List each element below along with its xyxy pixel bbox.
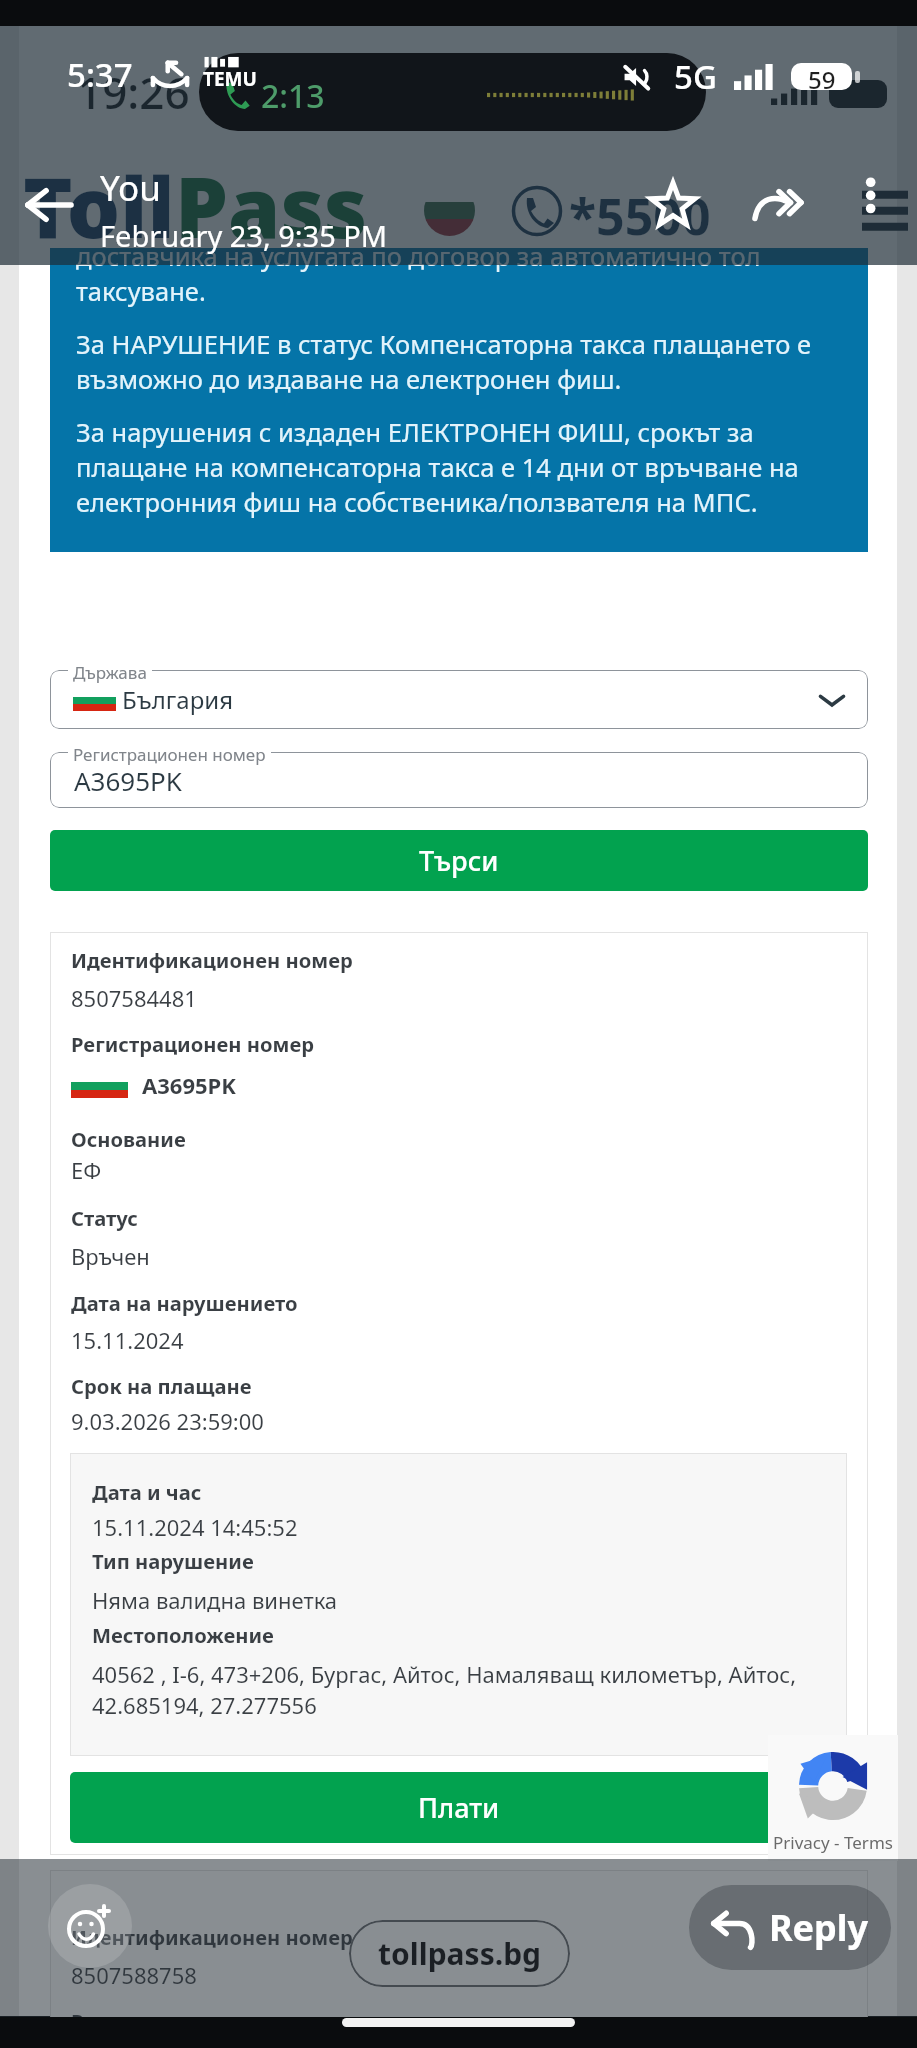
staticText: Основание xyxy=(71,1125,186,1153)
button[interactable]: tollpass.bg xyxy=(349,1920,570,1987)
staticText: Идентификационен номер xyxy=(71,946,353,974)
staticText: Регистрационен номер xyxy=(71,1030,315,1058)
button[interactable]: Ongoing call xyxy=(199,53,706,131)
staticText: Тип нарушение xyxy=(92,1547,254,1575)
staticText: ЕФ xyxy=(71,1155,102,1185)
staticText: Дата и час xyxy=(92,1478,202,1506)
staticText: 19:26 xyxy=(77,62,190,122)
staticText: За нарушения с издаден ЕЛЕКТРОНЕН ФИШ, с… xyxy=(76,415,754,450)
staticText: Статус xyxy=(71,1204,138,1232)
staticText: Местоположение xyxy=(92,1621,274,1649)
staticText: 15.11.2024 xyxy=(71,1325,184,1355)
staticText: TEMU xyxy=(203,66,257,92)
staticText: Няма валидна винетка xyxy=(92,1585,338,1615)
staticText: 5G xyxy=(674,54,717,99)
staticText: Плати xyxy=(418,1789,500,1826)
staticText: Дата на нарушението xyxy=(71,1289,298,1317)
button[interactable]: Favourite xyxy=(640,172,706,238)
staticText: Срок на плащане xyxy=(71,1372,252,1400)
staticText: Privacy - Terms xyxy=(773,1831,893,1854)
button[interactable]: You xyxy=(100,164,388,255)
staticText: таксуване. xyxy=(76,274,206,309)
staticText: Връчен xyxy=(71,1241,150,1271)
staticText: Държава xyxy=(73,661,147,684)
button[interactable]: Reply xyxy=(689,1885,891,1970)
staticText: 8507588758 xyxy=(71,1960,197,1990)
staticText: Търси xyxy=(419,842,499,879)
staticText: 42.685194, 27.277556 xyxy=(92,1690,317,1720)
staticText: 8507584481 xyxy=(71,983,197,1013)
staticText: Reply xyxy=(769,1903,869,1952)
staticText: A3695PK xyxy=(142,1070,236,1100)
staticText: tollpass.bg xyxy=(378,1933,542,1974)
staticText: 15.11.2024 14:45:52 xyxy=(92,1512,298,1542)
staticText: *5500 xyxy=(569,182,711,250)
staticText: February 23, 9:35 PM xyxy=(100,216,388,255)
button[interactable]: Back xyxy=(14,170,84,240)
staticText: плащане на компенсаторна такса е 14 дни … xyxy=(76,450,799,485)
staticText: Pass xyxy=(175,148,368,262)
button[interactable]: Forward xyxy=(745,172,811,238)
staticText: България xyxy=(122,683,233,716)
staticText: Toll xyxy=(23,148,175,262)
staticText: Идентификационен номер xyxy=(71,1923,353,1951)
staticText: Регистрационен номер xyxy=(71,2007,315,2035)
staticText: За НАРУШЕНИЕ в статус Компенсаторна такс… xyxy=(76,327,812,362)
staticText: 5:37 xyxy=(67,52,133,97)
button[interactable]: Плати xyxy=(70,1772,847,1843)
staticText: възможно до издаване на електронен фиш. xyxy=(76,362,622,397)
staticText: доставчика на услугата по договор за авт… xyxy=(76,248,761,274)
staticText: електронния фиш на собственика/ползвател… xyxy=(76,485,758,520)
staticText: 9.03.2026 23:59:00 xyxy=(71,1406,264,1436)
button[interactable]: Търси xyxy=(50,830,868,891)
staticText: You xyxy=(100,164,161,212)
button[interactable]: A3695PK xyxy=(50,752,868,808)
staticText: 59 xyxy=(808,63,836,90)
staticText: A3695PK xyxy=(74,763,182,798)
staticText: 2:13 xyxy=(261,74,325,118)
button[interactable]: More options xyxy=(836,166,898,228)
button[interactable]: reCAPTCHA privacy and terms xyxy=(768,1735,898,1861)
staticText: 40562 , I-6, 473+206, Бургас, Айтос, Нам… xyxy=(92,1659,797,1689)
staticText: Регистрационен номер xyxy=(73,743,266,766)
button[interactable]: Add reaction xyxy=(48,1884,132,1968)
button[interactable]: България xyxy=(50,670,868,729)
